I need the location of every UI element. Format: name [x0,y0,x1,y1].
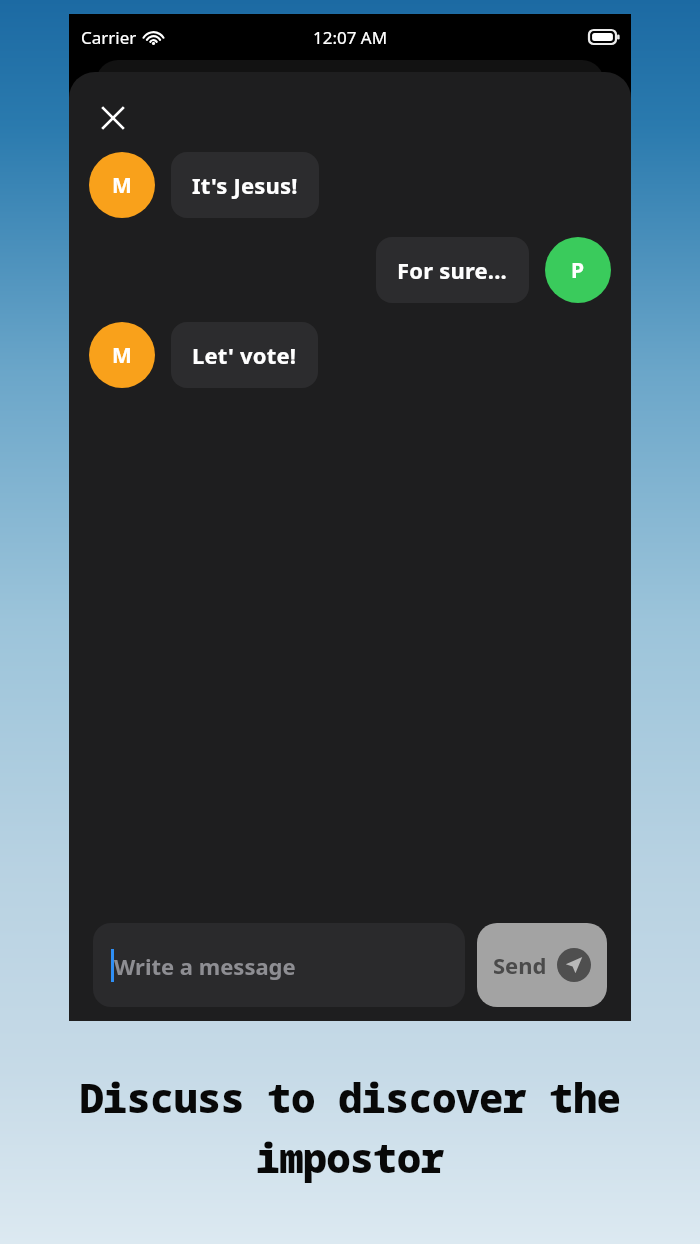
staticText: Carrier [81,26,137,49]
button[interactable]: It's Jesus! [171,152,319,218]
button[interactable]: Write a message [93,923,465,1007]
staticText: 12:07 AM [313,26,388,49]
staticText: Discuss to discover the impostor [0,1070,700,1185]
button[interactable]: Close [89,94,137,142]
button[interactable]: Send [477,923,607,1007]
staticText: Send [493,950,547,980]
button[interactable]: Avatar M [89,322,155,388]
button[interactable]: Avatar P [545,237,611,303]
staticText: It's Jesus! [192,170,298,200]
staticText: Write a message [114,951,296,981]
button[interactable]: For sure... [376,237,529,303]
staticText: P [571,256,585,285]
staticText: For sure... [397,255,508,285]
staticText: M [112,171,132,200]
staticText: M [112,341,132,370]
staticText: Let' vote! [192,340,297,370]
button[interactable]: Avatar M [89,152,155,218]
button[interactable]: Let' vote! [171,322,318,388]
